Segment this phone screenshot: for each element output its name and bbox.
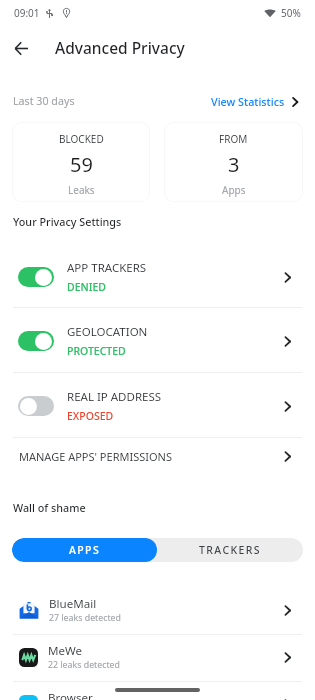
staticText: Last 30 days bbox=[13, 94, 75, 109]
staticText: Browser bbox=[48, 690, 93, 700]
staticText: FROM bbox=[219, 132, 248, 146]
staticText: APP TRACKERS bbox=[67, 260, 147, 276]
button[interactable]: FROM bbox=[164, 122, 303, 202]
staticText: BLOCKED bbox=[59, 132, 104, 146]
staticText: PROTECTED bbox=[67, 344, 126, 358]
staticText: Leaks bbox=[68, 183, 95, 197]
staticText: TRACKERS bbox=[199, 543, 261, 557]
staticText: MANAGE APPS' PERMISSIONS bbox=[19, 449, 172, 464]
button[interactable]: Back bbox=[1, 28, 41, 68]
staticText: BlueMail bbox=[49, 596, 97, 612]
button[interactable]: Browser bbox=[0, 681, 315, 700]
staticText: MeWe bbox=[48, 643, 83, 659]
staticText: 09:01 bbox=[14, 6, 40, 20]
staticText: APPS bbox=[69, 543, 101, 557]
staticText: REAL IP ADDRESS bbox=[67, 389, 162, 405]
button[interactable]: APP TRACKERS bbox=[0, 248, 315, 306]
staticText: 3 bbox=[228, 151, 240, 178]
staticText: DENIED bbox=[67, 280, 106, 294]
staticText: GEOLOCATION bbox=[67, 324, 148, 340]
staticText: 27 leaks detected bbox=[49, 612, 121, 624]
button[interactable]: APPS bbox=[12, 538, 157, 562]
button[interactable]: MANAGE APPS' PERMISSIONS bbox=[0, 441, 315, 471]
staticText: View Statistics bbox=[211, 94, 285, 109]
button[interactable]: GEOLOCATION bbox=[0, 312, 315, 370]
staticText: 59 bbox=[70, 151, 93, 178]
button[interactable]: BLOCKED bbox=[12, 122, 150, 202]
staticText: Advanced Privacy bbox=[55, 37, 185, 58]
staticText: 22 leaks detected bbox=[48, 659, 120, 671]
button[interactable]: BlueMail bbox=[0, 587, 315, 633]
button[interactable]: REAL IP ADDRESS bbox=[0, 377, 315, 435]
button[interactable]: MeWe bbox=[0, 634, 315, 680]
staticText: Wall of shame bbox=[13, 500, 86, 515]
button[interactable]: TRACKERS bbox=[157, 538, 303, 562]
staticText: 50% bbox=[281, 6, 301, 20]
staticText: Your Privacy Settings bbox=[13, 214, 122, 229]
staticText: Apps bbox=[222, 183, 246, 197]
button[interactable]: View Statistics bbox=[211, 94, 301, 109]
staticText: EXPOSED bbox=[67, 409, 114, 423]
